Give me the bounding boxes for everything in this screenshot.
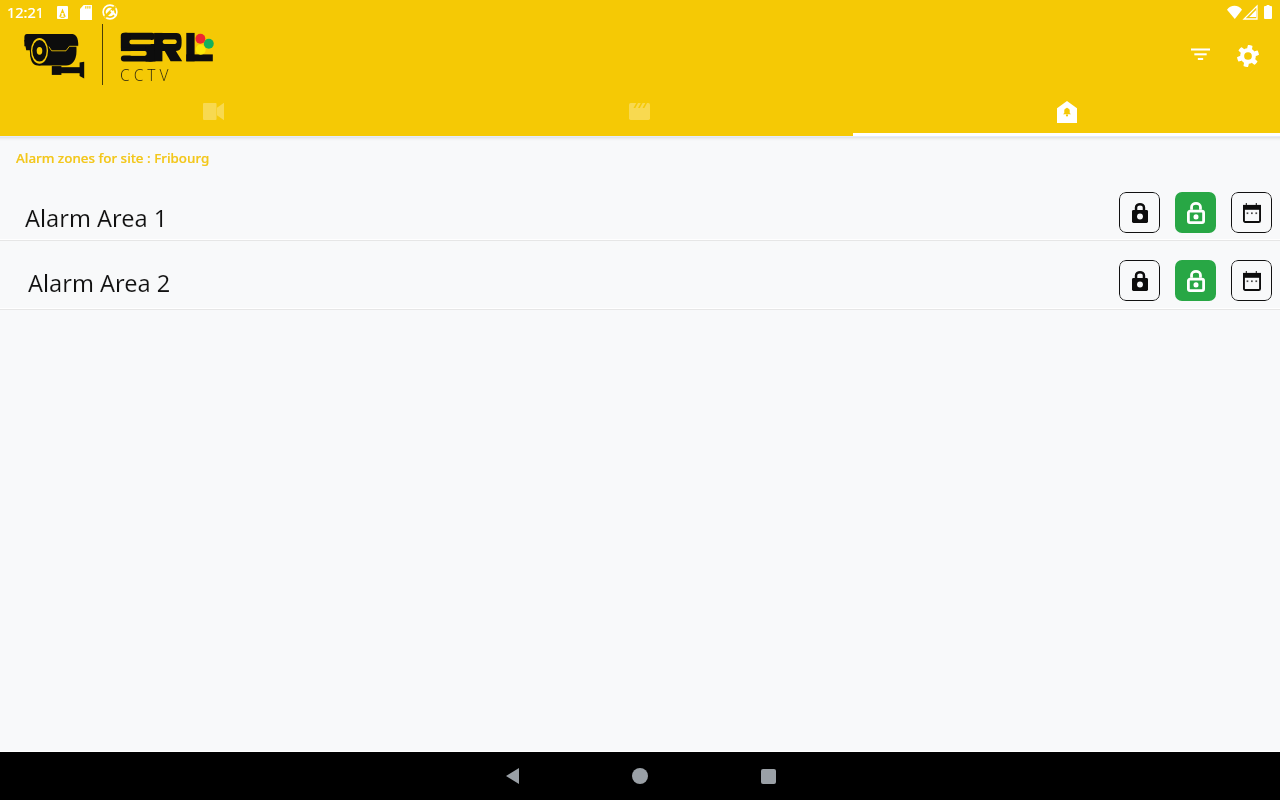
staticText: Alarm Area 2	[28, 267, 171, 299]
button[interactable]: Alarm	[853, 92, 1280, 136]
button[interactable]: Arm	[1119, 192, 1160, 233]
button[interactable]: Live view	[0, 92, 426, 136]
button[interactable]: Filter	[1176, 30, 1224, 78]
button[interactable]: Home	[612, 752, 668, 800]
button[interactable]: Settings	[1224, 32, 1272, 80]
button[interactable]: Schedule	[1231, 192, 1272, 233]
button[interactable]: Alarm Area 1	[0, 172, 1280, 239]
button[interactable]: Recent apps	[740, 752, 796, 800]
staticText: 12:21	[7, 2, 45, 22]
staticText: Alarm zones for site : Fribourg	[16, 149, 210, 167]
button[interactable]: Arm	[1119, 260, 1160, 301]
button[interactable]: Back	[484, 752, 540, 800]
button[interactable]: Disarm	[1175, 260, 1216, 301]
button[interactable]: Recordings	[426, 92, 853, 136]
button[interactable]: Schedule	[1231, 260, 1272, 301]
staticText: Alarm Area 1	[25, 202, 168, 234]
staticText: C C T V	[120, 64, 169, 85]
button[interactable]: Alarm Area 2	[0, 241, 1280, 308]
button[interactable]: Disarm	[1175, 192, 1216, 233]
